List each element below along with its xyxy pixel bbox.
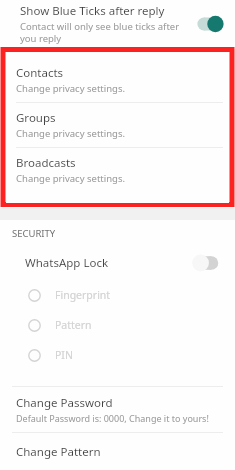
button[interactable]: Broadcasts [6, 148, 229, 192]
staticText: SECURITY [12, 227, 56, 240]
button[interactable]: Groups [6, 103, 229, 147]
staticText: Change privacy settings. [16, 172, 126, 185]
staticText: Contact will only see blue ticks after y… [20, 20, 187, 45]
button[interactable]: PIN [0, 340, 235, 370]
button[interactable]: Show Blue Ticks after reply [0, 0, 235, 48]
button[interactable]: WhatsApp Lock toggle, off [189, 253, 223, 273]
button[interactable]: Pattern [0, 310, 235, 340]
button[interactable]: Show blue ticks toggle, on [193, 14, 227, 34]
staticText: Groups [16, 110, 56, 126]
staticText: Show Blue Ticks after reply [20, 3, 165, 19]
button[interactable]: Contacts [6, 58, 229, 102]
staticText: Change Pattern [16, 444, 101, 460]
staticText: Fingerprint [55, 288, 111, 302]
button[interactable]: Fingerprint [0, 280, 235, 310]
staticText: Default Password is: 0000, Change it to … [16, 412, 209, 424]
button[interactable]: Change Password [0, 387, 235, 432]
button[interactable]: Change Pattern [0, 433, 235, 470]
staticText: Pattern [55, 318, 92, 332]
staticText: Contacts [16, 65, 64, 81]
staticText: Change Password [16, 395, 113, 411]
staticText: WhatsApp Lock [25, 255, 189, 271]
staticText: Change privacy settings. [16, 127, 126, 140]
staticText: PIN [55, 348, 73, 362]
button[interactable]: WhatsApp Lock [0, 246, 235, 280]
staticText: Change privacy settings. [16, 82, 126, 95]
staticText: Broadcasts [16, 155, 76, 171]
